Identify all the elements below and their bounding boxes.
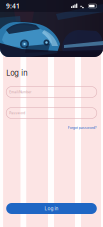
staticText: Forgot password?: [68, 125, 97, 130]
button[interactable]: Email/Number: [6, 86, 97, 97]
staticText: 9:41: [6, 2, 20, 10]
button[interactable]: Forgot password?: [68, 125, 97, 130]
button[interactable]: Log in: [6, 203, 97, 214]
staticText: Log in: [6, 68, 27, 77]
button[interactable]: Password: [6, 107, 97, 118]
staticText: Log in: [44, 206, 58, 211]
staticText: Password: [9, 111, 25, 115]
staticText: Email/Number: [9, 90, 31, 94]
